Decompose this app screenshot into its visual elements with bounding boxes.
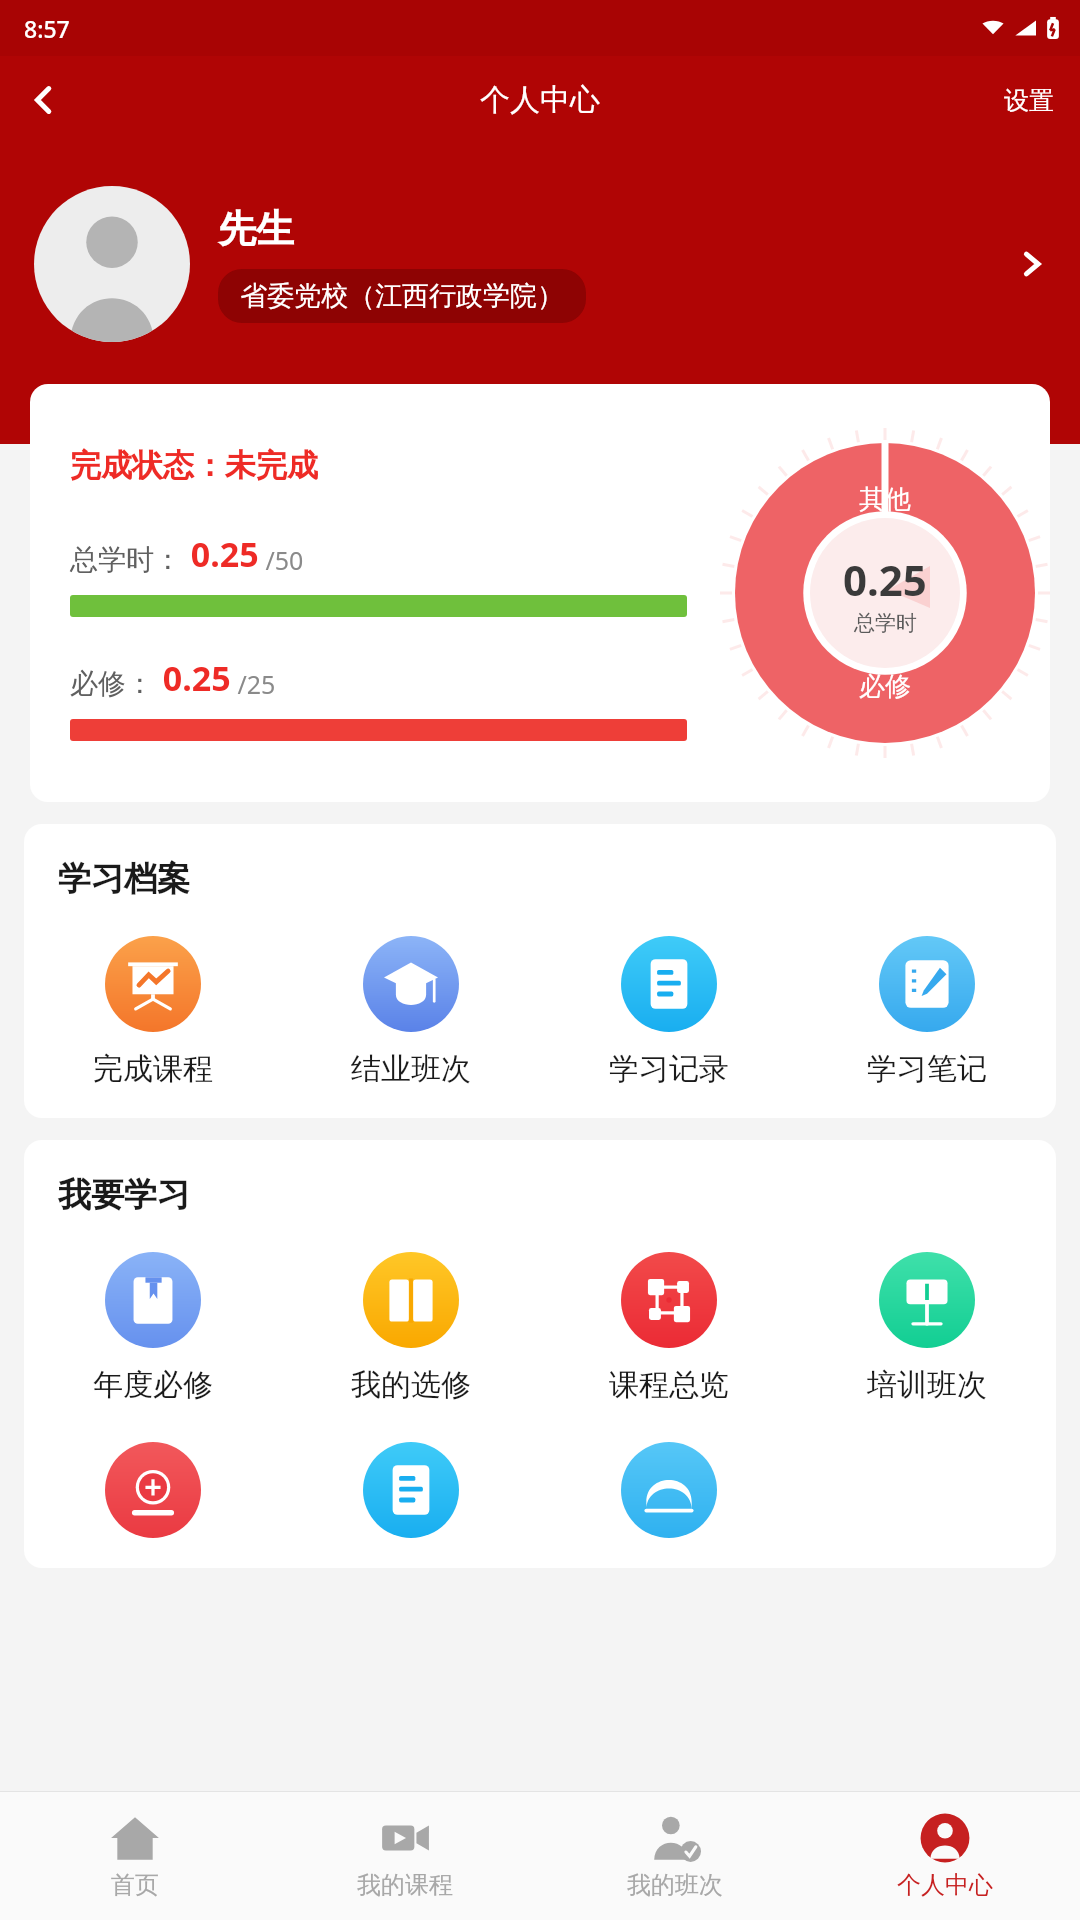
button[interactable]: 结业班次 bbox=[282, 930, 540, 1094]
button[interactable]: 我的选修 bbox=[282, 1246, 540, 1410]
button[interactable]: 年度必修 bbox=[24, 1246, 282, 1410]
staticText: 我要学习 bbox=[58, 1174, 190, 1216]
button[interactable]: 我的课程 bbox=[270, 1792, 540, 1920]
staticText: 先生 bbox=[218, 205, 294, 253]
staticText: 完成课程 bbox=[93, 1050, 213, 1088]
staticText: 我的课程 bbox=[357, 1870, 453, 1900]
button[interactable]: 完成课程 bbox=[24, 930, 282, 1094]
staticText: 8:57 bbox=[24, 13, 70, 44]
button[interactable]: 我的班次 bbox=[540, 1792, 810, 1920]
staticText: 学习档案 bbox=[58, 858, 190, 900]
button[interactable]: 先生 bbox=[0, 144, 1080, 384]
staticText: 课程总览 bbox=[609, 1366, 729, 1404]
button[interactable] bbox=[282, 1436, 540, 1544]
staticText: 我的选修 bbox=[351, 1366, 471, 1404]
staticText: 其他 bbox=[859, 483, 911, 516]
staticText: 个人中心 bbox=[897, 1870, 993, 1900]
staticText: 省委党校（江西行政学院） bbox=[240, 279, 564, 313]
staticText: 结业班次 bbox=[351, 1050, 471, 1088]
button[interactable] bbox=[24, 1436, 282, 1544]
staticText: 必修 bbox=[859, 670, 911, 703]
button[interactable]: 学习记录 bbox=[540, 930, 798, 1094]
staticText: 0.25 bbox=[154, 655, 231, 701]
staticText: 总学时 bbox=[854, 610, 917, 636]
staticText: 个人中心 bbox=[480, 81, 600, 119]
staticText: 0.25 bbox=[843, 551, 927, 608]
staticText: 必修： bbox=[70, 666, 154, 701]
staticText: 设置 bbox=[1004, 85, 1054, 116]
button[interactable]: 个人中心 bbox=[810, 1792, 1080, 1920]
staticText: 学习笔记 bbox=[867, 1050, 987, 1088]
staticText: 完成状态： bbox=[70, 446, 225, 485]
staticText: /50 bbox=[259, 543, 304, 577]
staticText: 首页 bbox=[111, 1870, 159, 1900]
other: Profile detail bbox=[1018, 250, 1046, 278]
button[interactable] bbox=[540, 1436, 798, 1544]
button[interactable]: Back bbox=[10, 66, 78, 134]
staticText: 学习记录 bbox=[609, 1050, 729, 1088]
button[interactable]: 设置 bbox=[978, 69, 1080, 132]
staticText: 总学时： bbox=[70, 542, 182, 577]
button[interactable]: 首页 bbox=[0, 1792, 270, 1920]
staticText: /25 bbox=[231, 667, 276, 701]
staticText: 未完成 bbox=[225, 446, 318, 485]
staticText: 我的班次 bbox=[627, 1870, 723, 1900]
staticText: 0.25 bbox=[182, 531, 259, 577]
button[interactable]: 培训班次 bbox=[798, 1246, 1056, 1410]
button[interactable]: 学习笔记 bbox=[798, 930, 1056, 1094]
staticText: 年度必修 bbox=[93, 1366, 213, 1404]
staticText: 培训班次 bbox=[867, 1366, 987, 1404]
button[interactable]: 课程总览 bbox=[540, 1246, 798, 1410]
